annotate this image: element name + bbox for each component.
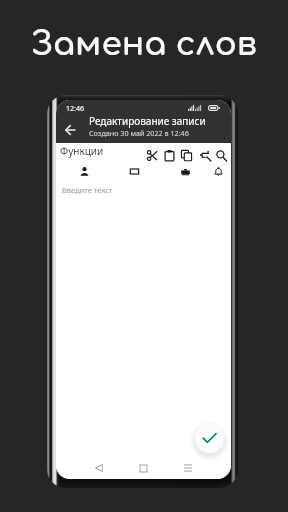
staticText: Функции	[60, 144, 104, 158]
button[interactable]: Готово	[195, 424, 224, 453]
button[interactable]: Недавние	[180, 460, 196, 476]
button[interactable]: Назад	[60, 120, 80, 140]
button[interactable]: Вырезать	[144, 147, 160, 163]
staticText: Замена слов	[0, 26, 288, 62]
button[interactable]: Копировать	[178, 147, 194, 163]
button[interactable]: Найти и заменить	[197, 147, 213, 163]
staticText: 12:46	[66, 104, 84, 114]
button[interactable]: Вставить блок	[126, 163, 142, 179]
button[interactable]: Профиль	[76, 163, 92, 179]
staticText: Введите текст	[62, 185, 113, 195]
staticText: Создано 30 май 2022 в 12:46	[89, 128, 189, 138]
button[interactable]: Работа	[177, 163, 193, 179]
button[interactable]: Напоминание	[210, 163, 226, 179]
button[interactable]: Поиск	[213, 147, 229, 163]
button[interactable]: Вставить	[161, 147, 177, 163]
button[interactable]: Домой	[135, 460, 151, 476]
button[interactable]: Назад	[91, 460, 107, 476]
staticText: Редактирование записи	[89, 114, 206, 128]
